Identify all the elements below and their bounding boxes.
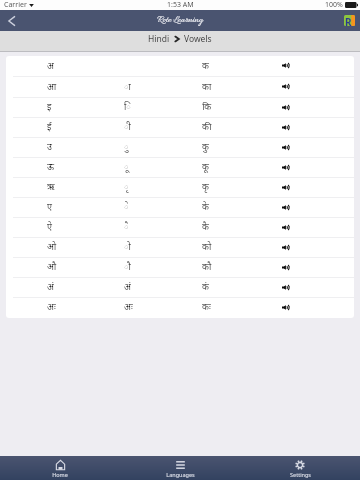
button[interactable]: ऐ xyxy=(6,218,354,238)
staticText: कं xyxy=(202,282,209,294)
staticText: ◌े xyxy=(124,202,129,214)
other: Play sound xyxy=(282,124,289,131)
staticText: ऊ xyxy=(47,162,55,174)
button[interactable]: इ xyxy=(6,98,354,118)
staticText: Rote Learning xyxy=(157,14,203,27)
staticText: ऐ xyxy=(47,222,52,234)
staticText: की xyxy=(202,122,212,134)
staticText: अ xyxy=(47,61,54,73)
staticText: ओ xyxy=(47,242,57,254)
staticText: आ xyxy=(47,82,57,94)
staticText: Settings xyxy=(290,471,311,478)
staticText: का xyxy=(202,82,212,94)
staticText: उ xyxy=(47,142,52,154)
other: Play sound xyxy=(282,284,289,291)
button[interactable]: अं xyxy=(6,278,354,298)
staticText: ◌ो xyxy=(124,242,131,254)
staticText: Vowels xyxy=(184,33,212,45)
staticText: इ xyxy=(47,102,52,114)
other: Play sound xyxy=(282,244,289,251)
staticText: ए xyxy=(47,202,52,214)
button[interactable]: ऊ xyxy=(6,158,354,178)
staticText: ◌ी xyxy=(124,122,131,134)
staticText: को xyxy=(202,242,212,254)
button[interactable]: ए xyxy=(6,198,354,218)
button[interactable]: उ xyxy=(6,138,354,158)
staticText: ◌ा xyxy=(124,82,131,94)
staticText: Home xyxy=(52,471,68,478)
staticText: के xyxy=(202,202,209,214)
staticText: 100% xyxy=(325,0,343,10)
button[interactable]: App icon xyxy=(344,15,355,26)
button[interactable]: ई xyxy=(6,118,354,138)
button[interactable]: Languages xyxy=(120,456,240,480)
button[interactable]: औ xyxy=(6,258,354,278)
staticText: औ xyxy=(47,262,57,274)
button[interactable]: Settings xyxy=(240,456,360,480)
other: Play sound xyxy=(282,144,289,151)
staticText: 1:53 AM xyxy=(167,0,194,10)
staticText: कृ xyxy=(202,182,209,194)
staticText: ◌ौ xyxy=(124,262,131,274)
staticText: ◌ू xyxy=(124,162,129,174)
staticText: ◌ि xyxy=(124,102,131,114)
button[interactable]: ओ xyxy=(6,238,354,258)
other: Languages xyxy=(176,460,185,470)
staticText: ◌ृ xyxy=(124,182,129,194)
staticText: क xyxy=(202,61,209,73)
staticText: ई xyxy=(47,122,52,134)
staticText: कु xyxy=(202,142,209,154)
staticText: कः xyxy=(202,302,211,314)
other: Play sound xyxy=(282,264,289,271)
other: Play sound xyxy=(282,164,289,171)
staticText: ◌ै xyxy=(124,222,129,234)
staticText: Carrier xyxy=(4,0,27,10)
staticText: कि xyxy=(202,102,212,114)
staticText: अं xyxy=(124,282,131,294)
staticText: कौ xyxy=(202,262,212,274)
other: Play sound xyxy=(282,184,289,191)
other: Play sound xyxy=(282,104,289,111)
other: Home xyxy=(56,460,65,470)
button[interactable]: Back xyxy=(0,11,22,31)
other: Play sound xyxy=(282,224,289,231)
button[interactable]: Home xyxy=(0,456,120,480)
staticText: कै xyxy=(202,222,209,234)
staticText: ऋ xyxy=(47,182,55,194)
other: Play sound xyxy=(282,304,289,311)
other: Settings xyxy=(295,460,305,470)
staticText: कू xyxy=(202,162,209,174)
button[interactable]: अः xyxy=(6,298,354,318)
other: Play sound xyxy=(282,83,289,90)
staticText: Languages xyxy=(166,471,195,478)
staticText: R xyxy=(345,15,352,26)
staticText: अः xyxy=(47,302,56,314)
staticText: Hindi xyxy=(148,33,170,45)
other: Play sound xyxy=(282,62,289,69)
button[interactable]: ऋ xyxy=(6,178,354,198)
staticText: अः xyxy=(124,302,133,314)
staticText: ◌ु xyxy=(124,142,129,154)
button[interactable]: अ xyxy=(6,56,354,77)
other: Play sound xyxy=(282,204,289,211)
button[interactable]: आ xyxy=(6,77,354,98)
staticText: अं xyxy=(47,282,54,294)
